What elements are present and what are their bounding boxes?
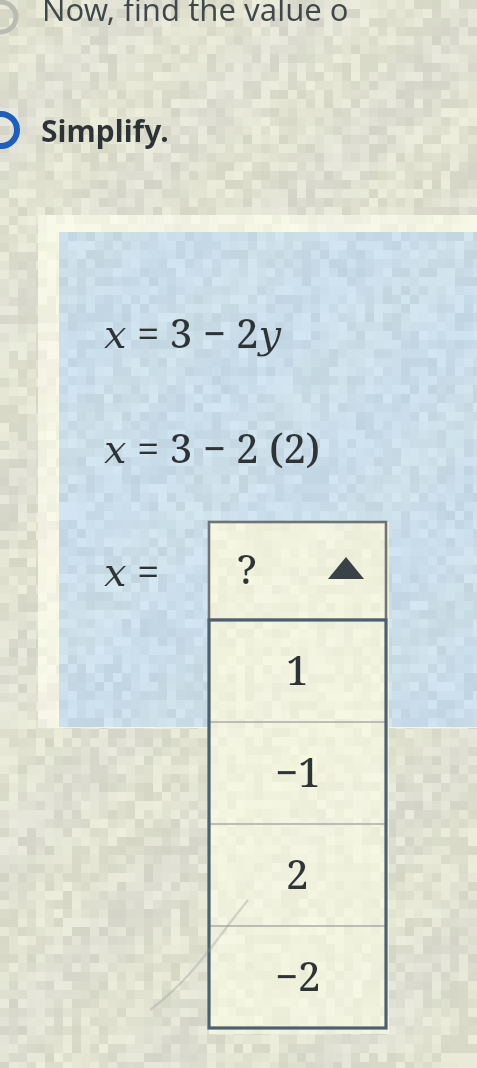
- staticText: 1: [286, 642, 309, 696]
- staticText: Now, find the value o: [42, 0, 349, 30]
- button[interactable]: 1: [209, 620, 386, 722]
- staticText: −2: [275, 948, 321, 1002]
- other: Collapse options: [328, 557, 364, 579]
- other: Step marker: [0, 112, 19, 148]
- button[interactable]: 2: [209, 824, 386, 926]
- staticText: ?: [237, 541, 257, 595]
- staticText: Simplify.: [41, 110, 169, 151]
- staticText: 2: [286, 846, 309, 900]
- staticText: −1: [275, 744, 321, 798]
- button[interactable]: Simplify.: [41, 110, 169, 151]
- staticText: 𝑥 = 3 − 2 (2): [104, 420, 321, 474]
- staticText: 𝑥 = 3 − 2𝑦: [104, 305, 282, 359]
- button[interactable]: Now, find the value o: [42, 0, 349, 30]
- button[interactable]: −1: [209, 722, 386, 824]
- staticText: 𝑥 =: [104, 543, 160, 597]
- button[interactable]: ?: [209, 522, 386, 620]
- button[interactable]: −2: [209, 926, 386, 1028]
